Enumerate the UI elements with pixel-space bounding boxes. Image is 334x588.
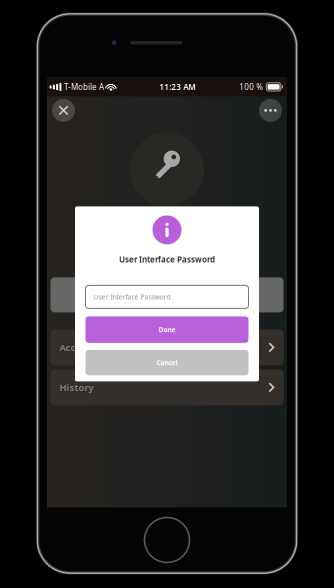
staticText: User Interface Password: [93, 292, 170, 301]
button[interactable]: More options: [259, 99, 282, 122]
staticText: Done: [158, 325, 175, 334]
button[interactable]: Cancel: [85, 350, 248, 375]
staticText: 100 %: [239, 82, 263, 92]
button[interactable]: History: [50, 369, 283, 405]
staticText: Account: [59, 341, 97, 354]
staticText: History: [59, 381, 93, 394]
staticText: T-Mobile A: [64, 82, 104, 92]
staticText: 11:23 AM: [159, 82, 195, 92]
staticText: User Interface Password: [119, 254, 215, 265]
button[interactable]: Done: [85, 316, 248, 343]
button[interactable]: Close: [52, 99, 75, 122]
staticText: Cancel: [156, 358, 177, 367]
button[interactable]: Account: [50, 329, 283, 365]
